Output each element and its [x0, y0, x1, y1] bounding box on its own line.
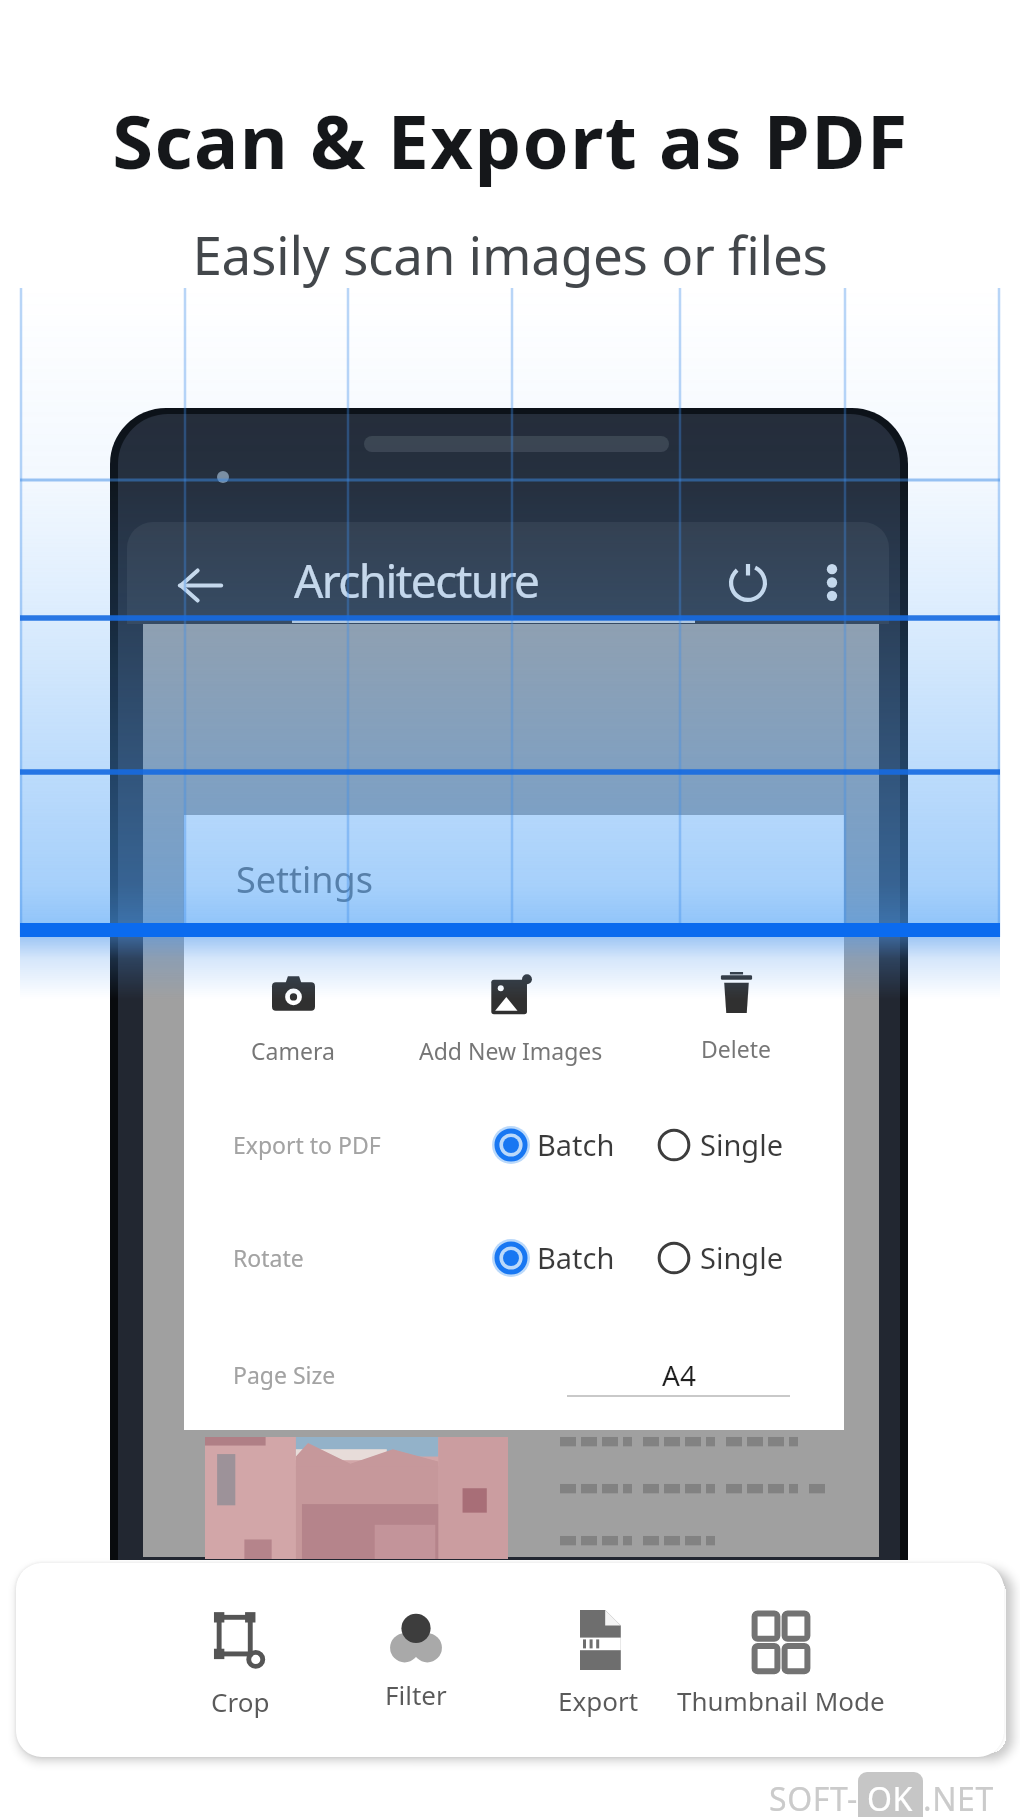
- staticText: Thumbnail Mode: [677, 1683, 885, 1718]
- staticText: .NET: [923, 1777, 994, 1817]
- button[interactable]: Camera: [178, 972, 408, 1066]
- button[interactable]: More options: [810, 560, 854, 604]
- staticText: A4: [662, 1356, 696, 1394]
- staticText: Single: [700, 1125, 783, 1164]
- staticText: Easily scan images or files: [192, 218, 828, 290]
- staticText: Page Size: [233, 1359, 336, 1390]
- staticText: Rotate: [233, 1242, 304, 1273]
- button[interactable]: Batch: [492, 1125, 615, 1164]
- button[interactable]: Single: [655, 1238, 783, 1277]
- button[interactable]: Rotate: [723, 558, 773, 608]
- button[interactable]: Back: [174, 559, 226, 611]
- button[interactable]: Single: [655, 1125, 783, 1164]
- staticText: Batch: [537, 1125, 615, 1164]
- staticText: Delete: [701, 1033, 771, 1064]
- staticText: Add New Images: [419, 1035, 603, 1066]
- staticText: Batch: [537, 1238, 615, 1277]
- staticText: Crop: [211, 1684, 270, 1719]
- staticText: Export: [558, 1683, 639, 1718]
- button[interactable]: Crop: [110, 1610, 370, 1719]
- staticText: Single: [700, 1238, 783, 1277]
- button[interactable]: Thumbnail Mode: [651, 1610, 911, 1718]
- staticText: Settings: [236, 855, 373, 904]
- button[interactable]: Batch: [492, 1238, 615, 1277]
- staticText: Scan & Export as PDF: [112, 90, 909, 191]
- button[interactable]: Export: [468, 1610, 728, 1718]
- button[interactable]: Filter: [286, 1610, 546, 1712]
- staticText: OK: [867, 1777, 914, 1817]
- staticText: Camera: [251, 1035, 335, 1066]
- staticText: Filter: [385, 1677, 447, 1712]
- staticText: Architecture: [294, 549, 539, 612]
- button[interactable]: Delete: [621, 972, 851, 1064]
- staticText: SOFT-: [769, 1777, 858, 1817]
- staticText: Export to PDF: [233, 1129, 381, 1160]
- button[interactable]: Add New Images: [396, 972, 626, 1066]
